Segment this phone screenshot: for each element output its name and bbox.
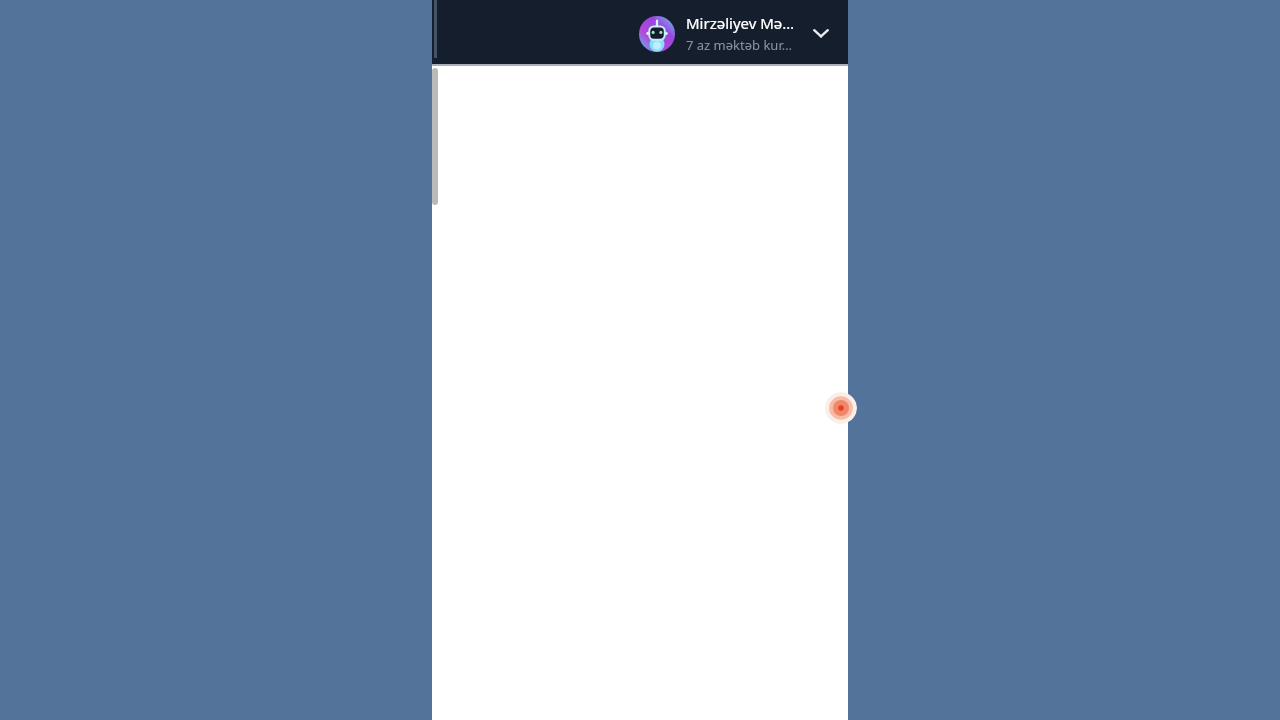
button[interactable]: Expand conversation (804, 16, 838, 50)
staticText: Mirzəliyev Mə… (686, 13, 795, 33)
button[interactable]: Mirzəliyev Mə… (635, 8, 799, 59)
button[interactable]: Live indicator (825, 392, 857, 424)
staticText: 7 az məktəb kur… (686, 36, 792, 54)
